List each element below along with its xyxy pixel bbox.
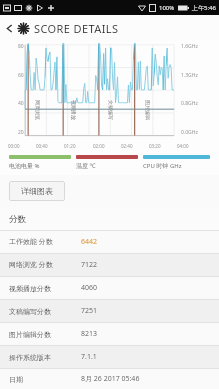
button[interactable]: 文稿编写分数 [0, 300, 219, 322]
staticText: 图片编辑 [145, 100, 151, 120]
staticText: 00:00 [8, 143, 20, 149]
staticText: 20 [18, 129, 24, 136]
staticText: 视频播放 [71, 100, 77, 120]
staticText: 8月 26 2017 05:46 [81, 374, 140, 384]
staticText: 上午5:46 [192, 4, 216, 12]
staticText: 操作系统版本 [9, 353, 51, 362]
staticText: 详细图表 [21, 186, 53, 196]
staticText: 网络浏览 分数 [9, 260, 53, 270]
staticText: 1.6GHz [181, 43, 198, 50]
button[interactable]: 图片编辑分数 [0, 323, 219, 345]
button[interactable]: 网络浏览 分数 [0, 254, 219, 276]
staticText: 视频播放分数 [9, 284, 51, 293]
staticText: 7251 [81, 306, 98, 316]
staticText: CPU 时钟 GHz [143, 162, 182, 170]
staticText: 80 [18, 43, 24, 50]
button[interactable]: Back [0, 15, 219, 41]
staticText: 电池电量 % [9, 162, 40, 170]
staticText: 0.0GHz [181, 129, 198, 136]
staticText: 02:00 [93, 143, 105, 149]
staticText: 40 [18, 100, 24, 107]
staticText: 1.3GHz [181, 72, 198, 79]
staticText: 00:40 [36, 143, 48, 149]
staticText: 图片编辑分数 [9, 330, 51, 339]
staticText: 0.8GHz [181, 100, 198, 107]
staticText: 01:20 [64, 143, 76, 149]
staticText: 7.1.1 [81, 352, 97, 362]
button[interactable]: 日期 [0, 369, 219, 389]
staticText: 60 [18, 72, 24, 79]
staticText: 文稿编写分数 [9, 307, 51, 316]
staticText: 8213 [81, 329, 98, 339]
staticText: 4060 [81, 283, 98, 293]
staticText: 温度 ℃ [76, 162, 96, 170]
staticText: 03:20 [149, 143, 161, 149]
staticText: 6442 [81, 237, 98, 247]
staticText: 100% [159, 4, 175, 12]
other: Back [4, 23, 15, 34]
staticText: 日期 [9, 375, 23, 384]
button[interactable]: 工作效能 分数 [0, 231, 219, 253]
button[interactable]: 详细图表 [9, 181, 65, 201]
staticText: 7122 [81, 260, 98, 270]
button[interactable]: 视频播放分数 [0, 277, 219, 299]
button[interactable]: 操作系统版本 [0, 346, 219, 368]
staticText: 02:40 [121, 143, 133, 149]
staticText: 文稿编写 [108, 100, 114, 120]
staticText: 网页浏览 [35, 100, 41, 120]
staticText: 04:00 [177, 143, 189, 149]
staticText: 分数 [9, 214, 26, 225]
staticText: 工作效能 分数 [9, 237, 53, 247]
staticText: SCORE DETAILS [34, 21, 119, 36]
